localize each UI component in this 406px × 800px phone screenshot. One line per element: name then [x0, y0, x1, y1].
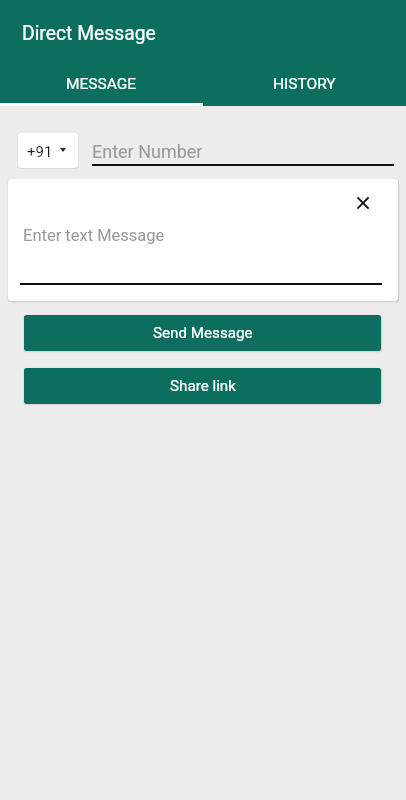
button[interactable]: HISTORY [203, 61, 406, 106]
staticText: Enter text Message [23, 226, 165, 245]
staticText: Send Message [153, 324, 253, 342]
button[interactable]: Share link [24, 368, 381, 404]
staticText: Share link [170, 377, 236, 395]
staticText: Direct Message [22, 22, 156, 45]
staticText: MESSAGE [66, 75, 137, 93]
button[interactable]: Enter Number [92, 106, 394, 179]
button[interactable]: Enter text Message [20, 217, 382, 289]
button[interactable]: Country code +91 [18, 133, 78, 168]
staticText: HISTORY [273, 75, 336, 93]
staticText: Enter Number [92, 141, 203, 162]
button[interactable]: Send Message [24, 315, 381, 351]
staticText: +91 [27, 143, 53, 161]
button[interactable]: MESSAGE [0, 61, 203, 106]
button[interactable]: Close [350, 190, 375, 215]
